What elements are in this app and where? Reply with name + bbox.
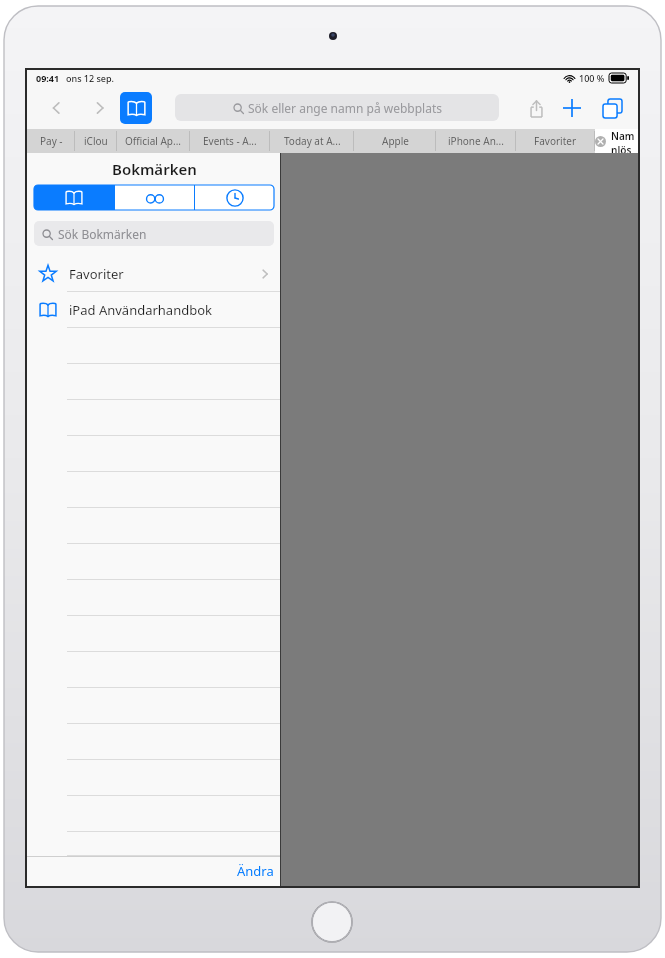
button[interactable]: Bookmarks: [34, 185, 114, 210]
staticText: Favoriter: [534, 134, 577, 148]
staticText: iPad Användarhandbok: [69, 301, 212, 319]
staticText: Today at A...: [284, 134, 341, 148]
other: Close tab: [595, 136, 606, 147]
button[interactable]: Tab: [195, 185, 274, 210]
button[interactable]: iPhone An...: [436, 129, 516, 153]
staticText: iPhone An...: [448, 134, 504, 148]
button[interactable]: Events - A...: [190, 129, 270, 153]
button[interactable]: Ändra: [237, 862, 274, 880]
staticText: Apple: [382, 134, 409, 148]
button[interactable]: Forward: [83, 91, 117, 125]
button[interactable]: Apple: [354, 129, 436, 153]
staticText: Ändra: [237, 862, 274, 880]
button[interactable]: New tab: [555, 91, 589, 125]
staticText: Sök eller ange namn på webbplats: [248, 100, 442, 116]
staticText: iClou: [84, 134, 108, 148]
staticText: Pay -: [40, 134, 63, 148]
button[interactable]: iClou: [75, 129, 117, 153]
button[interactable]: Today at A...: [270, 129, 354, 153]
staticText: 09:41: [36, 72, 60, 84]
button[interactable]: Back: [39, 91, 73, 125]
button[interactable]: Tab: [115, 185, 194, 210]
staticText: Bokmärken: [112, 159, 197, 179]
button[interactable]: Official Ap...: [117, 129, 190, 153]
staticText: ons 12 sep.: [66, 72, 115, 84]
button[interactable]: Sök Bokmärken: [34, 221, 274, 246]
staticText: Events - A...: [203, 134, 257, 148]
button[interactable]: Favoriter: [516, 129, 595, 153]
button[interactable]: Show all tabs: [595, 91, 629, 125]
staticText: Namnlös: [611, 129, 638, 153]
button[interactable]: Close tab: [595, 129, 638, 153]
staticText: Official Ap...: [125, 134, 182, 148]
button[interactable]: Favoriter: [27, 256, 281, 292]
button[interactable]: Share: [519, 91, 553, 125]
button[interactable]: iPad Användarhandbok: [27, 292, 281, 328]
button[interactable]: Bookmarks: [120, 92, 152, 124]
staticText: Favoriter: [69, 265, 124, 283]
button[interactable]: Pay -: [27, 129, 75, 153]
staticText: 100 %: [579, 72, 605, 84]
staticText: Sök Bokmärken: [58, 226, 147, 242]
button[interactable]: Sök eller ange namn på webbplats: [175, 94, 499, 121]
